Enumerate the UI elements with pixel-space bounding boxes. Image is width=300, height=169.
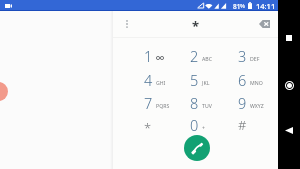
button[interactable]: Backspace [254,14,274,34]
staticText: PQRS [156,102,170,109]
button[interactable]: 0 [185,113,231,136]
button[interactable]: 3 [233,44,279,67]
button[interactable]: * [139,113,185,136]
button[interactable]: 4 [139,68,185,91]
staticText: 81 [233,2,241,11]
button[interactable]: 1 [139,44,185,67]
staticText: 4 [144,70,153,90]
staticText: 8 [190,93,199,113]
staticText: GHI [156,79,166,86]
button[interactable]: 7 [139,91,185,114]
button[interactable]: # [233,113,279,136]
button[interactable]: 8 [185,91,231,114]
button[interactable]: 2 [185,44,231,67]
staticText: # [238,116,247,134]
staticText: % [240,2,245,10]
button[interactable]: 5 [185,68,231,91]
staticText: DEF [250,55,260,62]
staticText: 5 [190,70,199,90]
button[interactable]: Back [279,120,299,140]
staticText: 14:11 [256,1,276,11]
staticText: * [144,119,152,137]
staticText: 1 [144,46,153,66]
staticText: 7 [144,93,153,113]
button[interactable]: Home [279,75,299,95]
staticText: ABC [202,55,212,62]
button[interactable]: Recents [279,28,299,48]
staticText: 9 [238,93,247,113]
staticText: 0 [190,115,199,135]
button[interactable]: 6 [233,68,279,91]
staticText: 3 [238,46,247,66]
button[interactable]: More options [117,14,137,34]
staticText: WXYZ [250,102,264,109]
button[interactable]: Call [184,135,210,161]
staticText: 6 [238,70,247,90]
staticText: + [202,124,205,131]
button[interactable]: 9 [233,91,279,114]
staticText: TUV [202,102,212,109]
staticText: MNO [250,79,263,86]
staticText: * [192,17,200,35]
staticText: JKL [202,79,210,86]
staticText: 2 [190,46,199,66]
